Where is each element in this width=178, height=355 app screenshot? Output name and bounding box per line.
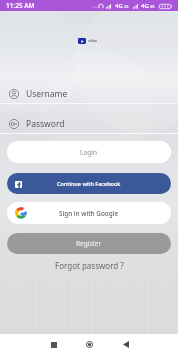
button[interactable]: Recent apps bbox=[43, 334, 64, 355]
staticText: Register bbox=[76, 239, 102, 248]
button[interactable]: Forgot password ? bbox=[0, 259, 178, 272]
staticText: Forgot password ? bbox=[55, 260, 124, 271]
staticText: 11:25 AM bbox=[6, 1, 35, 10]
staticText: vidfom bbox=[88, 39, 98, 43]
button[interactable]: Back bbox=[115, 334, 136, 355]
staticText: 4G bbox=[141, 2, 149, 10]
staticText: Sign in with Google bbox=[59, 209, 119, 218]
button[interactable]: Login bbox=[7, 141, 171, 163]
button[interactable]: Sign in with Google bbox=[7, 202, 171, 224]
button[interactable]: Password bbox=[0, 114, 178, 133]
staticText: Login bbox=[80, 148, 98, 157]
staticText: 4G bbox=[115, 2, 123, 10]
button[interactable]: Register bbox=[7, 233, 171, 254]
staticText: 35 bbox=[150, 4, 155, 9]
button[interactable]: Home bbox=[79, 334, 100, 355]
button[interactable]: Username bbox=[0, 84, 178, 103]
staticText: Password bbox=[26, 118, 65, 130]
staticText: 25 bbox=[124, 4, 129, 9]
button[interactable]: Continue with Facebook bbox=[7, 173, 171, 194]
staticText: Continue with Facebook bbox=[57, 180, 121, 187]
staticText: Username bbox=[26, 88, 68, 100]
